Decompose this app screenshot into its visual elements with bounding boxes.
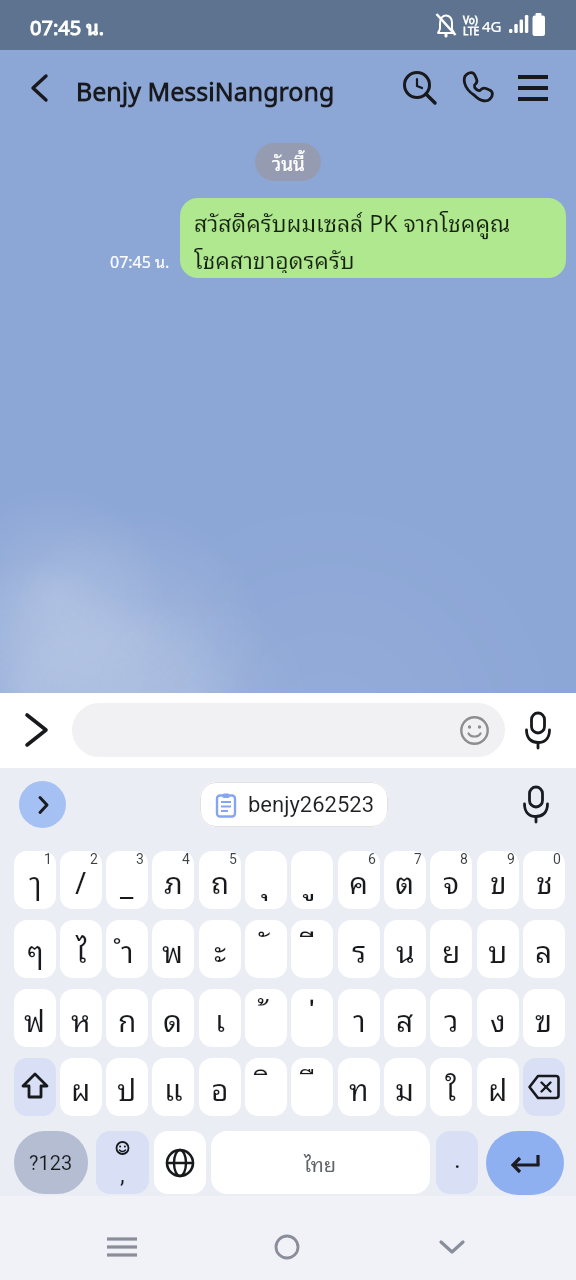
button[interactable] [16,709,60,753]
staticText: ภ [164,856,183,904]
button[interactable]: ฝ [477,1058,519,1116]
button[interactable]: ค [338,851,380,909]
staticText: 5 [229,851,237,867]
button[interactable]: ย [430,920,472,978]
button[interactable]: ข [477,851,519,909]
button[interactable]: ่ [291,989,333,1047]
button[interactable]: จ [430,851,472,909]
staticText: ะ [214,925,227,973]
button[interactable]: ฟ [14,989,56,1047]
button[interactable]: ด [152,989,194,1047]
button[interactable]: ว [430,989,472,1047]
staticText: ก [118,994,137,1042]
button[interactable]: สวัสดีครับผมเซลล์ PK จากโชคคูณ [180,198,566,278]
button[interactable]: ี [291,920,333,978]
button[interactable]: ื [291,1058,333,1116]
button[interactable]: . [436,1131,478,1194]
button[interactable] [486,1131,564,1195]
staticText: 07:45 น. [110,248,170,274]
button[interactable]: ภ [152,851,194,909]
staticText: / [75,856,87,904]
button[interactable]: ู [291,851,333,909]
button[interactable] [19,781,66,828]
button[interactable]: ๆ [14,920,56,978]
button[interactable]: ท [338,1058,380,1116]
staticText: 8 [460,851,468,867]
button[interactable] [154,1131,206,1194]
button[interactable] [523,1058,565,1116]
staticText: 3 [136,851,144,867]
button[interactable]: บ [477,920,519,978]
staticText: 07:45 น. [30,10,105,42]
button[interactable]: / [60,851,102,909]
staticText: ื [308,1058,316,1104]
button[interactable]: _ [106,851,148,909]
staticText: ถ [211,856,230,904]
button[interactable]: วันนี้ [255,143,321,181]
staticText: โชคสาขาอุดรครับ [194,240,355,273]
button[interactable] [455,66,499,110]
staticText: ผ [71,1063,91,1111]
staticText: ้ [262,989,270,1035]
button[interactable] [72,703,505,757]
button[interactable]: ห [60,989,102,1047]
staticText: ิ [262,1058,270,1104]
staticText: 2 [90,851,98,867]
button[interactable]: ก [106,989,148,1047]
button[interactable]: ไ [60,920,102,978]
staticText: ๆ [27,925,44,973]
button[interactable]: ะ [199,920,241,978]
staticText: ด [163,994,183,1042]
button[interactable]: ?123 [14,1131,88,1194]
staticText: Benjy MessiNangrong [76,70,335,110]
button[interactable] [514,778,558,830]
staticText: ฝ [488,1063,508,1111]
button[interactable]: , [96,1131,149,1194]
button[interactable]: ป [106,1058,148,1116]
button[interactable]: ง [477,989,519,1047]
button[interactable] [18,66,62,110]
staticText: ค [349,856,369,904]
button[interactable]: ั [245,920,287,978]
button[interactable]: ฃ [523,989,565,1047]
staticText: ่ [308,989,316,1035]
button[interactable]: ิ [245,1058,287,1116]
staticText: LTE [463,22,480,38]
button[interactable]: พ [152,920,194,978]
button[interactable]: ผ [60,1058,102,1116]
button[interactable]: ต [384,851,426,909]
button[interactable]: เ [199,989,241,1047]
button[interactable]: ไทย [211,1131,430,1194]
button[interactable]: ล [523,920,565,978]
button[interactable] [511,66,555,110]
button[interactable]: า [338,989,380,1047]
button[interactable] [516,703,560,757]
button[interactable] [426,1221,478,1273]
button[interactable] [261,1221,313,1273]
button[interactable]: benjy262523 [200,782,388,827]
staticText: ท [349,1063,369,1111]
button[interactable]: ส [384,989,426,1047]
button[interactable] [96,1221,148,1273]
button[interactable]: ม [384,1058,426,1116]
button[interactable]: ้ [245,989,287,1047]
button[interactable]: ถ [199,851,241,909]
button[interactable]: ุ [245,851,287,909]
staticText: ฃ [535,994,553,1042]
button[interactable]: ช [523,851,565,909]
button[interactable]: ๅ [14,851,56,909]
button[interactable]: ำ [106,920,148,978]
button[interactable]: แ [152,1058,194,1116]
button[interactable]: น [384,920,426,978]
staticText: ง [490,994,506,1042]
button[interactable] [398,66,442,110]
staticText: บ [488,925,508,973]
button[interactable]: ใ [430,1058,472,1116]
staticText: 9 [507,851,515,867]
button[interactable] [14,1058,56,1116]
staticText: ?123 [29,1151,73,1174]
button[interactable]: อ [199,1058,241,1116]
staticText: น [396,925,415,973]
button[interactable]: ร [338,920,380,978]
staticText: วันนี้ [272,147,305,177]
